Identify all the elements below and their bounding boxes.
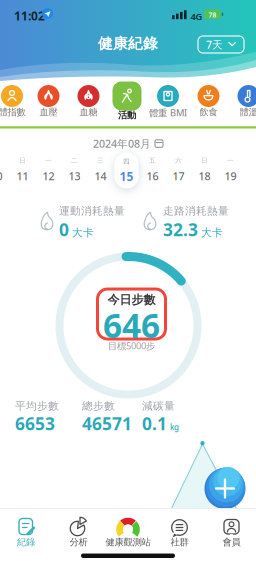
staticText: 32.3 — [163, 218, 198, 241]
staticText: 減碳量 — [142, 399, 175, 413]
staticText: 一 — [45, 156, 52, 165]
button[interactable]: 二 — [0, 0, 20, 14]
staticText: 五 — [149, 156, 156, 165]
button[interactable]: 四 — [114, 152, 139, 188]
button[interactable]: 六 — [0, 0, 20, 14]
staticText: 11:02 — [14, 8, 45, 24]
staticText: 社群 — [170, 536, 188, 548]
staticText: 18 — [198, 169, 210, 183]
button[interactable]: 日 — [0, 0, 20, 14]
button[interactable]: 三 — [0, 0, 20, 14]
staticText: 平均步數 — [15, 399, 59, 413]
button[interactable]: 新增 — [204, 468, 245, 509]
staticText: 19 — [224, 169, 236, 183]
staticText: 健康紀錄 — [98, 34, 158, 52]
staticText: 646 — [103, 303, 160, 347]
staticText: 今日步數 — [107, 292, 155, 307]
staticText: 0.1 — [142, 412, 167, 435]
staticText: 總步數 — [82, 399, 115, 413]
button[interactable]: 六 — [0, 0, 20, 14]
staticText: 二 — [71, 156, 78, 165]
staticText: 目標5000步 — [108, 339, 155, 352]
staticText: 12 — [42, 169, 54, 183]
button[interactable]: 活動 — [0, 0, 256, 562]
staticText: 大卡 — [72, 226, 94, 239]
staticText: 分析 — [69, 536, 87, 548]
staticText: 血壓 — [39, 106, 57, 118]
button[interactable]: 血壓 — [0, 0, 256, 562]
button[interactable]: 分析 — [0, 0, 256, 562]
staticText: 46571 — [82, 412, 132, 435]
button[interactable]: 健康觀測站 — [0, 0, 256, 562]
staticText: 日 — [19, 156, 26, 165]
button[interactable]: 社群 — [0, 0, 256, 562]
staticText: 四 — [123, 157, 130, 166]
button[interactable]: 會員 — [0, 0, 256, 562]
button[interactable]: 五 — [0, 0, 20, 14]
staticText: 13 — [68, 169, 80, 183]
staticText: 4G — [190, 10, 202, 23]
staticText: 14 — [94, 169, 106, 183]
button[interactable]: 一 — [0, 0, 20, 14]
button[interactable]: 飲食 — [0, 0, 256, 562]
staticText: 三 — [97, 156, 104, 165]
button[interactable]: 一 — [0, 0, 20, 14]
staticText: 飲食 — [199, 106, 217, 118]
staticText: 健康觀測站 — [105, 536, 150, 548]
staticText: 走路消耗熱量 — [163, 204, 229, 218]
staticText: 6653 — [15, 412, 55, 435]
staticText: 運動消耗熱量 — [59, 204, 125, 218]
staticText: 一 — [227, 156, 234, 165]
staticText: 78 — [208, 10, 216, 19]
staticText: 17 — [172, 169, 184, 183]
staticText: 日 — [201, 156, 208, 165]
staticText: 紀錄 — [17, 536, 35, 548]
button[interactable]: 7天 — [198, 36, 244, 53]
button[interactable]: 2024年08月 — [93, 136, 163, 151]
staticText: 六 — [175, 156, 182, 165]
staticText: kg — [170, 422, 179, 432]
staticText: 體指數 — [0, 106, 25, 118]
button[interactable]: 血糖 — [0, 0, 256, 562]
button[interactable]: 體溫 — [0, 0, 256, 562]
button[interactable]: 體指數 — [0, 0, 256, 562]
staticText: 大卡 — [201, 226, 223, 239]
staticText: 7天 — [206, 37, 223, 52]
staticText: 15 — [119, 168, 133, 184]
staticText: 11 — [16, 169, 28, 183]
staticText: 體重 BMI — [149, 106, 187, 119]
button[interactable]: 日 — [0, 0, 20, 14]
button[interactable]: 體重 BMI — [0, 0, 256, 562]
button[interactable]: 紀錄 — [0, 0, 256, 562]
staticText: 16 — [146, 169, 158, 183]
staticText: 血糖 — [79, 106, 97, 118]
staticText: 體溫 — [239, 106, 256, 118]
staticText: 10 — [0, 169, 2, 183]
staticText: 2024年08月 — [93, 136, 151, 151]
staticText: 活動 — [118, 109, 136, 121]
staticText: 0 — [59, 218, 69, 241]
staticText: 會員 — [222, 536, 240, 548]
